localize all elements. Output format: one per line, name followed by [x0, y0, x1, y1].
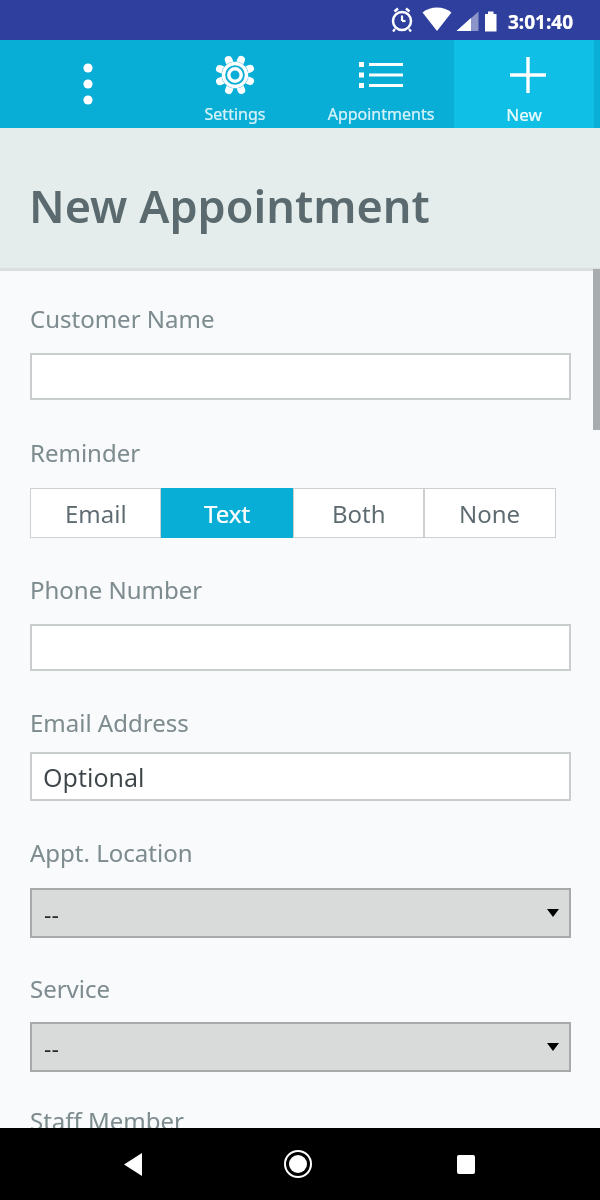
- staticText: Optional: [43, 760, 145, 794]
- staticText: Appt. Location: [30, 836, 193, 869]
- staticText: --: [44, 1032, 59, 1063]
- staticText: Reminder: [30, 436, 141, 469]
- staticText: Appointments: [321, 103, 441, 125]
- button[interactable]: None: [424, 488, 556, 538]
- button[interactable]: [103, 1128, 163, 1200]
- button[interactable]: --: [30, 1022, 571, 1072]
- staticText: 3:01:40: [508, 9, 574, 35]
- button[interactable]: Text: [161, 488, 293, 538]
- staticText: --: [44, 898, 59, 929]
- button[interactable]: --: [30, 888, 571, 938]
- staticText: Settings: [175, 103, 295, 125]
- staticText: Email: [65, 497, 127, 530]
- staticText: Staff Member: [30, 1104, 185, 1137]
- button[interactable]: [454, 40, 594, 128]
- button[interactable]: Email: [30, 488, 161, 538]
- staticText: None: [459, 497, 521, 530]
- staticText: Customer Name: [30, 302, 215, 335]
- button[interactable]: [30, 353, 571, 400]
- staticText: Text: [204, 497, 251, 530]
- button[interactable]: Both: [293, 488, 424, 538]
- button[interactable]: [30, 624, 571, 671]
- button[interactable]: Optional: [30, 752, 571, 801]
- staticText: New Appointment: [29, 175, 430, 236]
- staticText: New: [454, 103, 594, 126]
- staticText: Both: [332, 497, 386, 530]
- button[interactable]: [268, 1128, 328, 1200]
- button[interactable]: [175, 40, 295, 128]
- staticText: Phone Number: [30, 573, 203, 606]
- staticText: Email Address: [30, 706, 189, 739]
- button[interactable]: [60, 40, 116, 128]
- button[interactable]: [321, 40, 441, 128]
- staticText: Service: [30, 972, 111, 1005]
- button[interactable]: [436, 1128, 496, 1200]
